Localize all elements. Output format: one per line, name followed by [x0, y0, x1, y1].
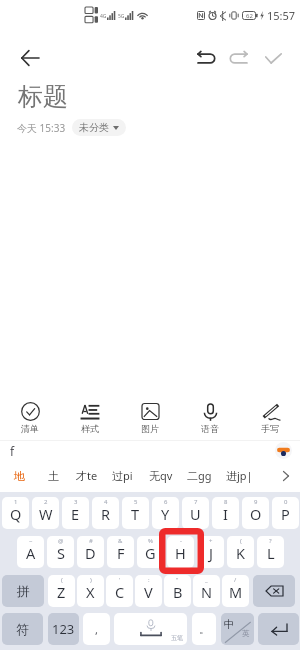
- staticText: Q: [10, 504, 22, 524]
- staticText: 5: [134, 498, 138, 506]
- staticText: N: [201, 582, 213, 602]
- button[interactable]: Back: [11, 39, 49, 77]
- button[interactable]: Enter: [258, 613, 299, 645]
- staticText: 五笔: [171, 634, 183, 642]
- staticText: V: [144, 582, 153, 602]
- button[interactable]: 土: [45, 466, 62, 486]
- button[interactable]: ': [106, 575, 133, 607]
- button[interactable]: ?: [257, 536, 284, 568]
- staticText: O: [250, 504, 262, 524]
- button[interactable]: (: [48, 575, 75, 607]
- staticText: 62: [246, 12, 253, 20]
- staticText: f: [10, 443, 15, 459]
- staticText: I: [223, 504, 228, 524]
- button[interactable]: 8: [212, 497, 239, 529]
- button[interactable]: Space: [114, 613, 187, 645]
- staticText: 土: [48, 469, 59, 483]
- button[interactable]: More candidates: [276, 466, 296, 486]
- staticText: H: [175, 543, 186, 563]
- button[interactable]: %: [137, 536, 164, 568]
- staticText: F: [117, 543, 125, 563]
- staticText: E: [71, 504, 80, 524]
- button[interactable]: 手写: [240, 399, 300, 437]
- staticText: 4: [104, 498, 108, 506]
- button[interactable]: ): [77, 575, 104, 607]
- staticText: 。: [199, 622, 210, 636]
- button[interactable]: _: [193, 575, 220, 607]
- staticText: 地: [14, 469, 25, 483]
- staticText: (: [240, 537, 242, 545]
- button[interactable]: 清单: [0, 399, 60, 437]
- button[interactable]: -: [167, 536, 194, 568]
- staticText: D: [85, 543, 96, 563]
- staticText: 图片: [141, 423, 159, 434]
- button[interactable]: Undo: [188, 41, 222, 75]
- staticText: /: [234, 576, 237, 584]
- staticText: X: [86, 582, 95, 602]
- button[interactable]: 过pi: [109, 465, 136, 486]
- button[interactable]: +: [197, 536, 224, 568]
- button[interactable]: 未分类: [72, 119, 126, 136]
- button[interactable]: 4: [92, 497, 119, 529]
- button[interactable]: 2: [32, 497, 59, 529]
- button[interactable]: /: [222, 575, 249, 607]
- button[interactable]: @: [47, 536, 74, 568]
- button[interactable]: 才te: [73, 465, 101, 486]
- button[interactable]: 7: [182, 497, 209, 529]
- button[interactable]: Switch language: [221, 613, 254, 645]
- button[interactable]: #: [77, 536, 104, 568]
- staticText: 标题: [18, 81, 68, 112]
- staticText: 3: [74, 498, 78, 506]
- button[interactable]: ": [164, 575, 191, 607]
- button[interactable]: 二gg: [184, 465, 215, 486]
- staticText: +: [209, 537, 213, 545]
- staticText: J: [209, 543, 213, 563]
- staticText: 2: [44, 498, 48, 506]
- staticText: ): [90, 576, 92, 584]
- staticText: M: [229, 582, 243, 602]
- button[interactable]: 。: [192, 613, 216, 645]
- staticText: 无qv: [149, 468, 173, 483]
- button[interactable]: 样式: [60, 399, 120, 437]
- staticText: 未分类: [79, 121, 109, 134]
- button[interactable]: 拼: [2, 575, 44, 607]
- button[interactable]: ,: [83, 613, 110, 645]
- staticText: 7: [194, 498, 198, 506]
- staticText: Z: [57, 582, 66, 602]
- button[interactable]: Save: [256, 41, 290, 75]
- button[interactable]: 0: [272, 497, 299, 529]
- button[interactable]: 9: [242, 497, 269, 529]
- button[interactable]: 无qv: [146, 465, 176, 486]
- staticText: 过pi: [112, 468, 133, 483]
- button[interactable]: &: [107, 536, 134, 568]
- staticText: 符: [16, 621, 29, 637]
- button[interactable]: 地: [11, 466, 28, 486]
- staticText: C: [115, 582, 125, 602]
- staticText: #: [89, 537, 93, 545]
- staticText: L: [267, 543, 275, 563]
- staticText: W: [39, 504, 53, 524]
- staticText: ': [119, 576, 121, 584]
- button[interactable]: Backspace: [253, 575, 295, 607]
- button[interactable]: ~: [17, 536, 44, 568]
- button[interactable]: 1: [2, 497, 29, 529]
- staticText: (: [61, 576, 63, 584]
- staticText: :: [148, 576, 150, 584]
- button[interactable]: 语音: [180, 399, 240, 437]
- button[interactable]: 123: [48, 613, 79, 645]
- staticText: 二gg: [187, 468, 212, 483]
- staticText: G: [145, 543, 156, 563]
- button[interactable]: 图片: [120, 399, 180, 437]
- staticText: 123: [52, 620, 75, 638]
- staticText: 1: [14, 498, 18, 506]
- staticText: 中: [224, 618, 235, 631]
- button[interactable]: 进jp|: [223, 465, 256, 486]
- staticText: ,: [95, 622, 98, 637]
- button[interactable]: 5: [122, 497, 149, 529]
- button[interactable]: :: [135, 575, 162, 607]
- button[interactable]: 3: [62, 497, 89, 529]
- button[interactable]: Redo: [222, 41, 256, 75]
- button[interactable]: (: [227, 536, 254, 568]
- button[interactable]: 6: [152, 497, 179, 529]
- button[interactable]: 符: [2, 613, 43, 645]
